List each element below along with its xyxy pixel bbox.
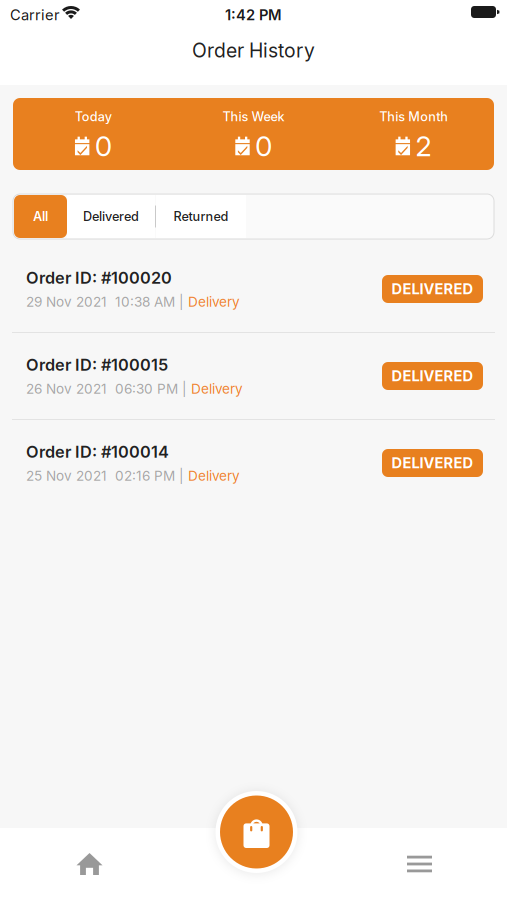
staticText: Order ID: #100014 [26,442,169,462]
staticText: 1:42 PM [225,6,282,24]
staticText: | [179,468,188,484]
staticText: Order ID: #100020 [26,268,172,288]
button[interactable]: Home [0,828,179,900]
staticText: | [179,294,188,310]
staticText: Returned [173,209,228,224]
staticText: DELIVERED [391,367,473,385]
button[interactable]: Delivered [67,195,155,238]
button[interactable]: Shop [220,795,293,868]
staticText: DELIVERED [391,454,473,472]
staticText: This Week [222,109,284,124]
button[interactable]: Menu [328,828,507,900]
staticText: 26 Nov 2021 06:30 PM [26,381,182,397]
staticText: Order History [192,39,315,62]
staticText: | [182,381,191,397]
staticText: This Month [379,109,448,124]
button[interactable]: Order ID: #100020 [0,246,507,332]
staticText: Delivery [188,294,240,310]
staticText: Delivered [83,209,139,224]
button[interactable]: All [14,195,67,238]
staticText: 25 Nov 2021 02:16 PM [26,468,179,484]
button[interactable]: Order ID: #100014 [0,420,507,506]
staticText: All [33,209,48,224]
button[interactable]: Returned [156,195,246,238]
staticText: Order ID: #100015 [26,355,168,375]
staticText: 0 [255,129,272,163]
staticText: 2 [415,129,432,163]
staticText: Delivery [191,381,243,397]
staticText: Delivery [188,468,240,484]
staticText: 29 Nov 2021 10:38 AM [26,294,179,310]
button[interactable]: Order ID: #100015 [0,333,507,419]
staticText: Today [75,109,112,124]
staticText: 0 [95,129,112,163]
staticText: DELIVERED [391,280,473,298]
staticText: Carrier [10,6,60,24]
